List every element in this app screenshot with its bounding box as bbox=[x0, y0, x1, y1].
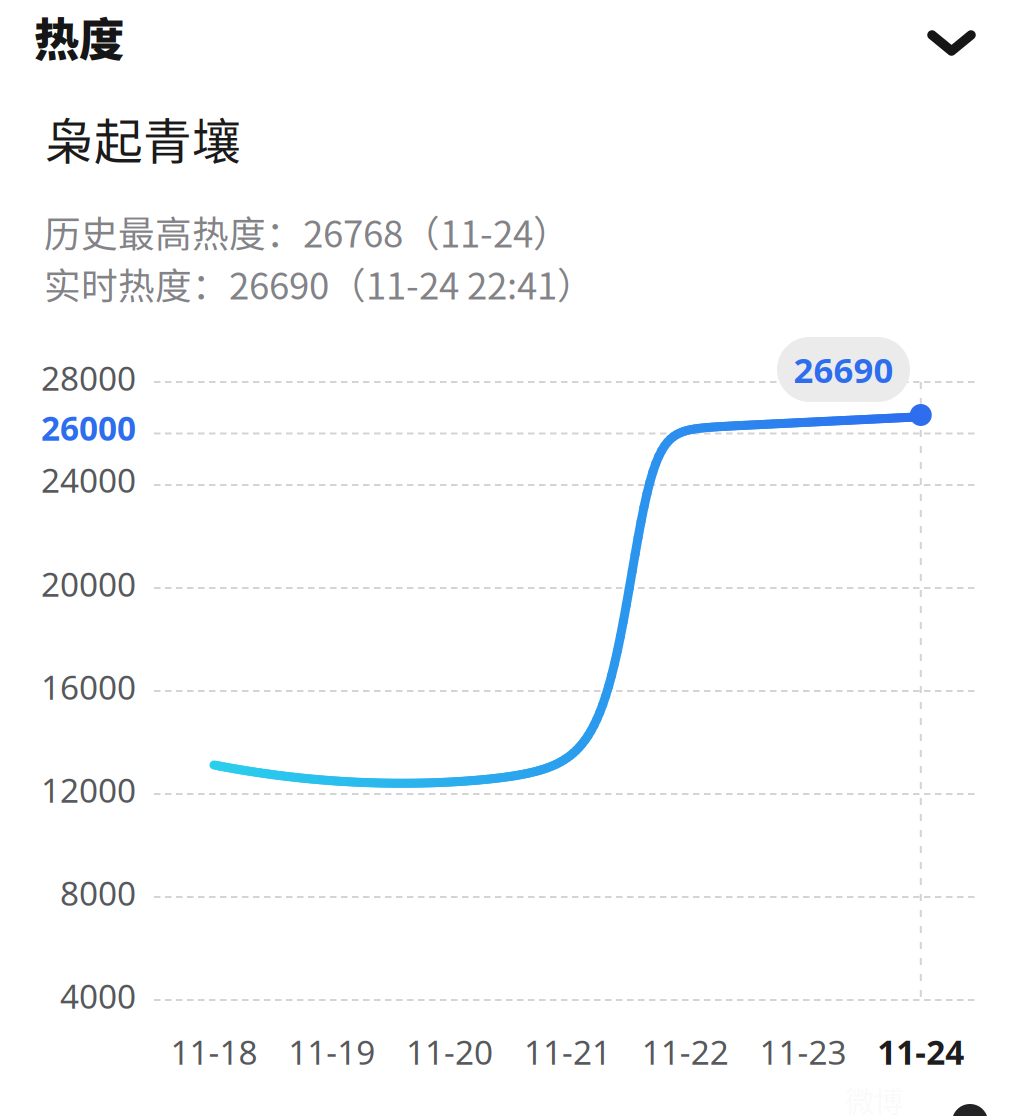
staticText: 16000 bbox=[41, 664, 136, 709]
staticText: 26000 bbox=[41, 405, 136, 450]
staticText: 20000 bbox=[41, 561, 136, 606]
staticText: 24000 bbox=[41, 457, 136, 502]
staticText: 枭起青壤 bbox=[45, 103, 241, 173]
staticText: 28000 bbox=[41, 355, 136, 400]
staticText: 热度 bbox=[34, 4, 124, 70]
staticText: 11-22 bbox=[642, 1029, 729, 1074]
button[interactable]: 热度 — collapse bbox=[0, 0, 1020, 85]
staticText: 11-20 bbox=[406, 1029, 493, 1074]
staticText: 实时热度：26690（11-24 22:41） bbox=[44, 257, 594, 310]
staticText: 11-18 bbox=[170, 1029, 257, 1074]
staticText: 11-23 bbox=[759, 1029, 846, 1074]
staticText: 11-21 bbox=[524, 1029, 611, 1074]
staticText: 4000 bbox=[60, 973, 136, 1018]
staticText: 11-19 bbox=[288, 1029, 375, 1074]
staticText: 11-24 bbox=[877, 1029, 964, 1074]
staticText: 12000 bbox=[41, 767, 136, 812]
staticText: 8000 bbox=[60, 870, 136, 915]
staticText: 历史最高热度：26768（11-24） bbox=[44, 205, 570, 258]
staticText: 26690 bbox=[793, 346, 893, 393]
